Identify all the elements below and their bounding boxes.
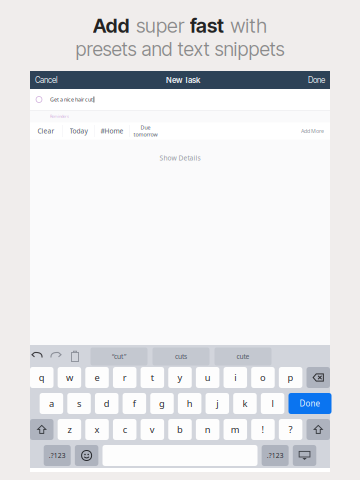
button[interactable]: Show Details <box>30 139 330 176</box>
button[interactable]: Add More <box>301 123 330 139</box>
button[interactable]: g <box>150 393 174 414</box>
button[interactable]: p <box>279 367 302 388</box>
button[interactable]: e <box>85 367 109 388</box>
button[interactable]: ? <box>279 419 302 440</box>
button[interactable]: Delete <box>306 367 330 388</box>
button[interactable]: u <box>196 367 219 388</box>
staticText: .?123 <box>267 451 284 460</box>
staticText: m <box>231 423 240 436</box>
button[interactable]: #Home <box>98 123 126 139</box>
staticText: Done <box>308 75 325 85</box>
button[interactable]: v <box>141 419 164 440</box>
button[interactable]: n <box>196 419 219 440</box>
staticText: d <box>104 397 110 410</box>
button[interactable]: o <box>251 367 275 388</box>
button[interactable]: ! <box>251 419 275 440</box>
button[interactable]: Done <box>304 71 329 89</box>
button[interactable]: m <box>224 419 247 440</box>
button[interactable]: s <box>67 393 91 414</box>
staticText: t <box>151 371 154 384</box>
staticText: e <box>94 371 99 384</box>
button[interactable]: h <box>178 393 201 414</box>
staticText: l <box>272 397 274 410</box>
button[interactable]: Today <box>65 123 91 139</box>
staticText: j <box>216 397 218 410</box>
button[interactable]: cuts <box>152 347 209 365</box>
button[interactable]: y <box>168 367 192 388</box>
staticText: p <box>288 371 294 384</box>
button[interactable]: d <box>95 393 118 414</box>
button[interactable]: c <box>113 419 136 440</box>
staticText: c <box>123 423 127 436</box>
staticText: i <box>234 371 236 384</box>
staticText: cuts <box>175 352 187 361</box>
button[interactable]: Shift <box>306 419 330 440</box>
staticText: o <box>260 371 266 384</box>
button[interactable]: t <box>141 367 164 388</box>
staticText: Add More <box>301 127 324 135</box>
staticText: Reminders <box>50 113 69 119</box>
staticText: “cut” <box>112 352 126 361</box>
button[interactable]: w <box>58 367 81 388</box>
button[interactable]: i <box>224 367 247 388</box>
staticText: with <box>230 14 267 37</box>
staticText: k <box>242 397 247 410</box>
staticText: a <box>49 397 54 410</box>
staticText: h <box>187 397 193 410</box>
staticText: ! <box>261 423 264 436</box>
button[interactable]: j <box>206 393 229 414</box>
button[interactable]: Paste <box>70 351 79 362</box>
staticText: u <box>205 371 211 384</box>
staticText: z <box>67 423 71 436</box>
staticText: v <box>150 423 155 436</box>
button[interactable]: Due <box>131 123 159 139</box>
staticText: x <box>94 423 99 436</box>
button[interactable]: z <box>58 419 81 440</box>
button[interactable]: a <box>40 393 63 414</box>
button[interactable]: .?123 <box>44 445 71 466</box>
staticText: ? <box>289 423 293 436</box>
button[interactable]: Hide Keyboard <box>293 445 316 466</box>
button[interactable]: k <box>233 393 257 414</box>
staticText: cute <box>236 352 249 361</box>
staticText: Add <box>93 14 130 37</box>
button[interactable]: r <box>113 367 136 388</box>
button[interactable]: Shift <box>30 419 53 440</box>
staticText: g <box>159 397 165 410</box>
button[interactable]: q <box>30 367 53 388</box>
button[interactable]: .?123 <box>262 445 289 466</box>
staticText: b <box>177 423 183 436</box>
button[interactable]: Redo <box>50 351 61 361</box>
staticText: q <box>39 371 45 384</box>
staticText: Due <box>140 124 150 131</box>
staticText: .?123 <box>49 451 66 460</box>
staticText: tomorrow <box>133 131 157 138</box>
staticText: Today <box>69 127 87 135</box>
staticText: w <box>66 371 73 384</box>
button[interactable]: b <box>168 419 192 440</box>
staticText: Done <box>299 398 320 409</box>
button[interactable]: Undo <box>31 351 42 361</box>
staticText: New Task <box>166 75 200 85</box>
staticText: n <box>205 423 211 436</box>
staticText: super <box>136 14 184 37</box>
button[interactable]: Cancel <box>31 71 62 89</box>
button[interactable]: “cut” <box>90 347 147 365</box>
button[interactable]: x <box>85 419 109 440</box>
staticText: Clear <box>37 127 54 135</box>
button[interactable]: Emoji <box>75 445 98 466</box>
staticText: presets and text snippets <box>75 37 284 61</box>
staticText: Get a nice hair cut <box>50 96 93 103</box>
staticText: s <box>77 397 81 410</box>
staticText: f <box>133 397 136 410</box>
staticText: Show Details <box>159 154 200 162</box>
button[interactable]: Done <box>288 393 331 414</box>
staticText: #Home <box>100 127 123 135</box>
button[interactable]: f <box>123 393 146 414</box>
button[interactable]: l <box>261 393 284 414</box>
staticText: y <box>177 371 182 384</box>
button[interactable]: cute <box>214 347 271 365</box>
button[interactable]: Clear <box>33 123 59 139</box>
